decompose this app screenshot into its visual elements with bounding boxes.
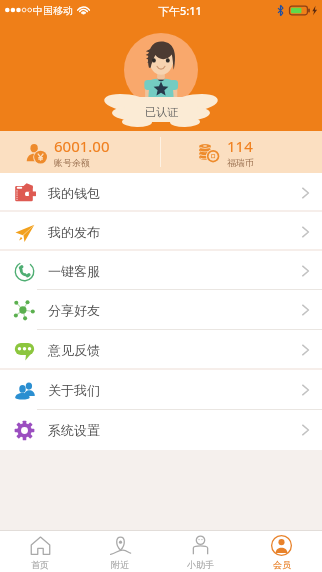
button[interactable]: Member (241, 531, 322, 572)
button[interactable]: 系统设置 (0, 410, 322, 450)
staticText: 会员 (273, 559, 291, 570)
staticText: 福瑞币 (227, 157, 254, 168)
button[interactable]: 我的发布 (0, 212, 322, 251)
staticText: 中国移动 (33, 4, 73, 17)
button[interactable]: Assistant (160, 531, 241, 572)
staticText: 关于我们 (48, 382, 100, 398)
staticText: 账号余额 (54, 157, 90, 168)
staticText: 一键客服 (48, 263, 100, 279)
staticText: 分享好友 (48, 302, 100, 318)
staticText: 已认证 (145, 105, 178, 119)
staticText: 我的发布 (48, 224, 100, 240)
staticText: 下午5:11 (158, 3, 202, 18)
button[interactable]: 我的钱包 (0, 173, 322, 212)
staticText: 我的钱包 (48, 185, 100, 201)
button[interactable]: Nearby (80, 531, 160, 572)
button[interactable]: Home (0, 531, 80, 572)
staticText: 系统设置 (48, 422, 100, 438)
button[interactable]: 一键客服 (0, 251, 322, 290)
staticText: 附近 (111, 559, 129, 570)
staticText: 114 (227, 136, 253, 156)
staticText: 小助手 (187, 559, 214, 570)
staticText: 意见反馈 (48, 342, 100, 358)
staticText: 6001.00 (54, 136, 110, 156)
button[interactable]: 关于我们 (0, 370, 322, 410)
button[interactable]: 分享好友 (0, 290, 322, 330)
button[interactable]: 114 (161, 131, 322, 173)
staticText: 首页 (31, 559, 49, 570)
button[interactable]: 意见反馈 (0, 330, 322, 370)
button[interactable]: 6001.00 (0, 131, 160, 173)
